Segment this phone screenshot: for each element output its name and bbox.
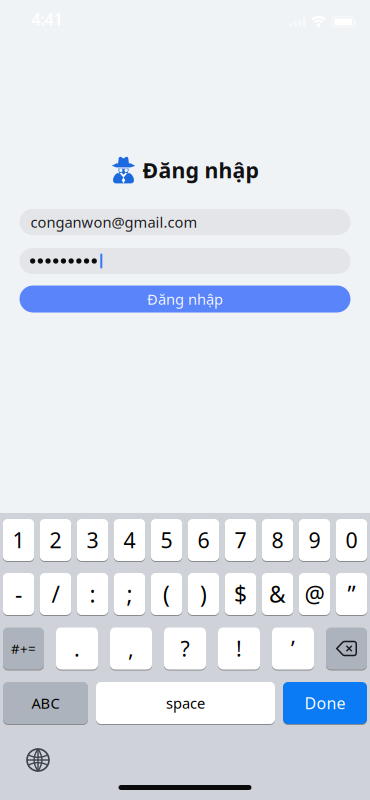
staticText: 7 xyxy=(234,526,246,554)
staticText: Done xyxy=(304,692,345,714)
staticText: ) xyxy=(200,579,207,609)
staticText: : xyxy=(89,579,95,609)
staticText: & xyxy=(269,579,286,609)
button[interactable]: ? xyxy=(164,627,206,670)
staticText: 4:41 xyxy=(31,8,62,30)
button[interactable]: ABC xyxy=(3,681,88,724)
button[interactable]: ) xyxy=(188,572,219,615)
button[interactable]: conganwon@gmail.com xyxy=(19,209,350,235)
button[interactable]: : xyxy=(77,572,108,615)
button[interactable]: 3 xyxy=(77,518,108,561)
button[interactable]: 4 xyxy=(114,518,145,561)
staticText: #+= xyxy=(11,640,36,657)
staticText: ” xyxy=(347,579,355,609)
staticText: ( xyxy=(163,579,170,609)
button[interactable]: $ xyxy=(225,572,256,615)
staticText: Đăng nhập xyxy=(147,289,223,309)
staticText: space xyxy=(166,693,205,713)
button[interactable]: #+= xyxy=(3,627,44,670)
staticText: . xyxy=(74,634,80,663)
staticText: 0 xyxy=(345,526,357,554)
staticText: ; xyxy=(126,579,132,609)
button[interactable]: Password xyxy=(19,248,350,274)
button[interactable]: Done xyxy=(283,681,367,724)
button[interactable]: 7 xyxy=(225,518,256,561)
button[interactable]: . xyxy=(56,627,98,670)
staticText: $ xyxy=(234,579,247,609)
button[interactable]: @ xyxy=(299,572,330,615)
button[interactable]: ” xyxy=(336,572,367,615)
button[interactable]: 5 xyxy=(151,518,182,561)
button[interactable]: 0 xyxy=(336,518,367,561)
staticText: , xyxy=(128,634,134,663)
staticText: ! xyxy=(236,634,242,663)
staticText: ’ xyxy=(291,634,295,663)
button[interactable]: 6 xyxy=(188,518,219,561)
staticText: ? xyxy=(180,634,189,663)
button[interactable]: & xyxy=(262,572,293,615)
staticText: 1 xyxy=(12,526,24,554)
button[interactable]: Đăng nhập xyxy=(19,285,350,312)
staticText: 9 xyxy=(308,526,320,554)
button[interactable]: ’ xyxy=(272,627,314,670)
button[interactable]: 1 xyxy=(3,518,34,561)
staticText: 5 xyxy=(160,526,172,554)
button[interactable]: 9 xyxy=(299,518,330,561)
button[interactable]: ( xyxy=(151,572,182,615)
staticText: conganwon@gmail.com xyxy=(30,212,197,232)
button[interactable]: 2 xyxy=(40,518,71,561)
staticText: 4 xyxy=(123,526,135,554)
staticText: 2 xyxy=(49,526,61,554)
staticText: - xyxy=(15,579,22,609)
staticText: 3 xyxy=(86,526,98,554)
button[interactable]: space xyxy=(96,681,275,724)
staticText: / xyxy=(51,579,59,609)
button[interactable]: Next keyboard xyxy=(27,749,49,771)
button[interactable]: ; xyxy=(114,572,145,615)
staticText: 8 xyxy=(271,526,283,554)
staticText: 6 xyxy=(197,526,209,554)
button[interactable]: Delete xyxy=(326,627,367,670)
staticText: @ xyxy=(304,579,324,609)
button[interactable]: ! xyxy=(218,627,260,670)
button[interactable]: 8 xyxy=(262,518,293,561)
staticText: Đăng nhập xyxy=(142,156,258,184)
button[interactable]: / xyxy=(40,572,71,615)
button[interactable]: - xyxy=(3,572,34,615)
button[interactable]: , xyxy=(110,627,152,670)
staticText: ABC xyxy=(31,693,59,713)
